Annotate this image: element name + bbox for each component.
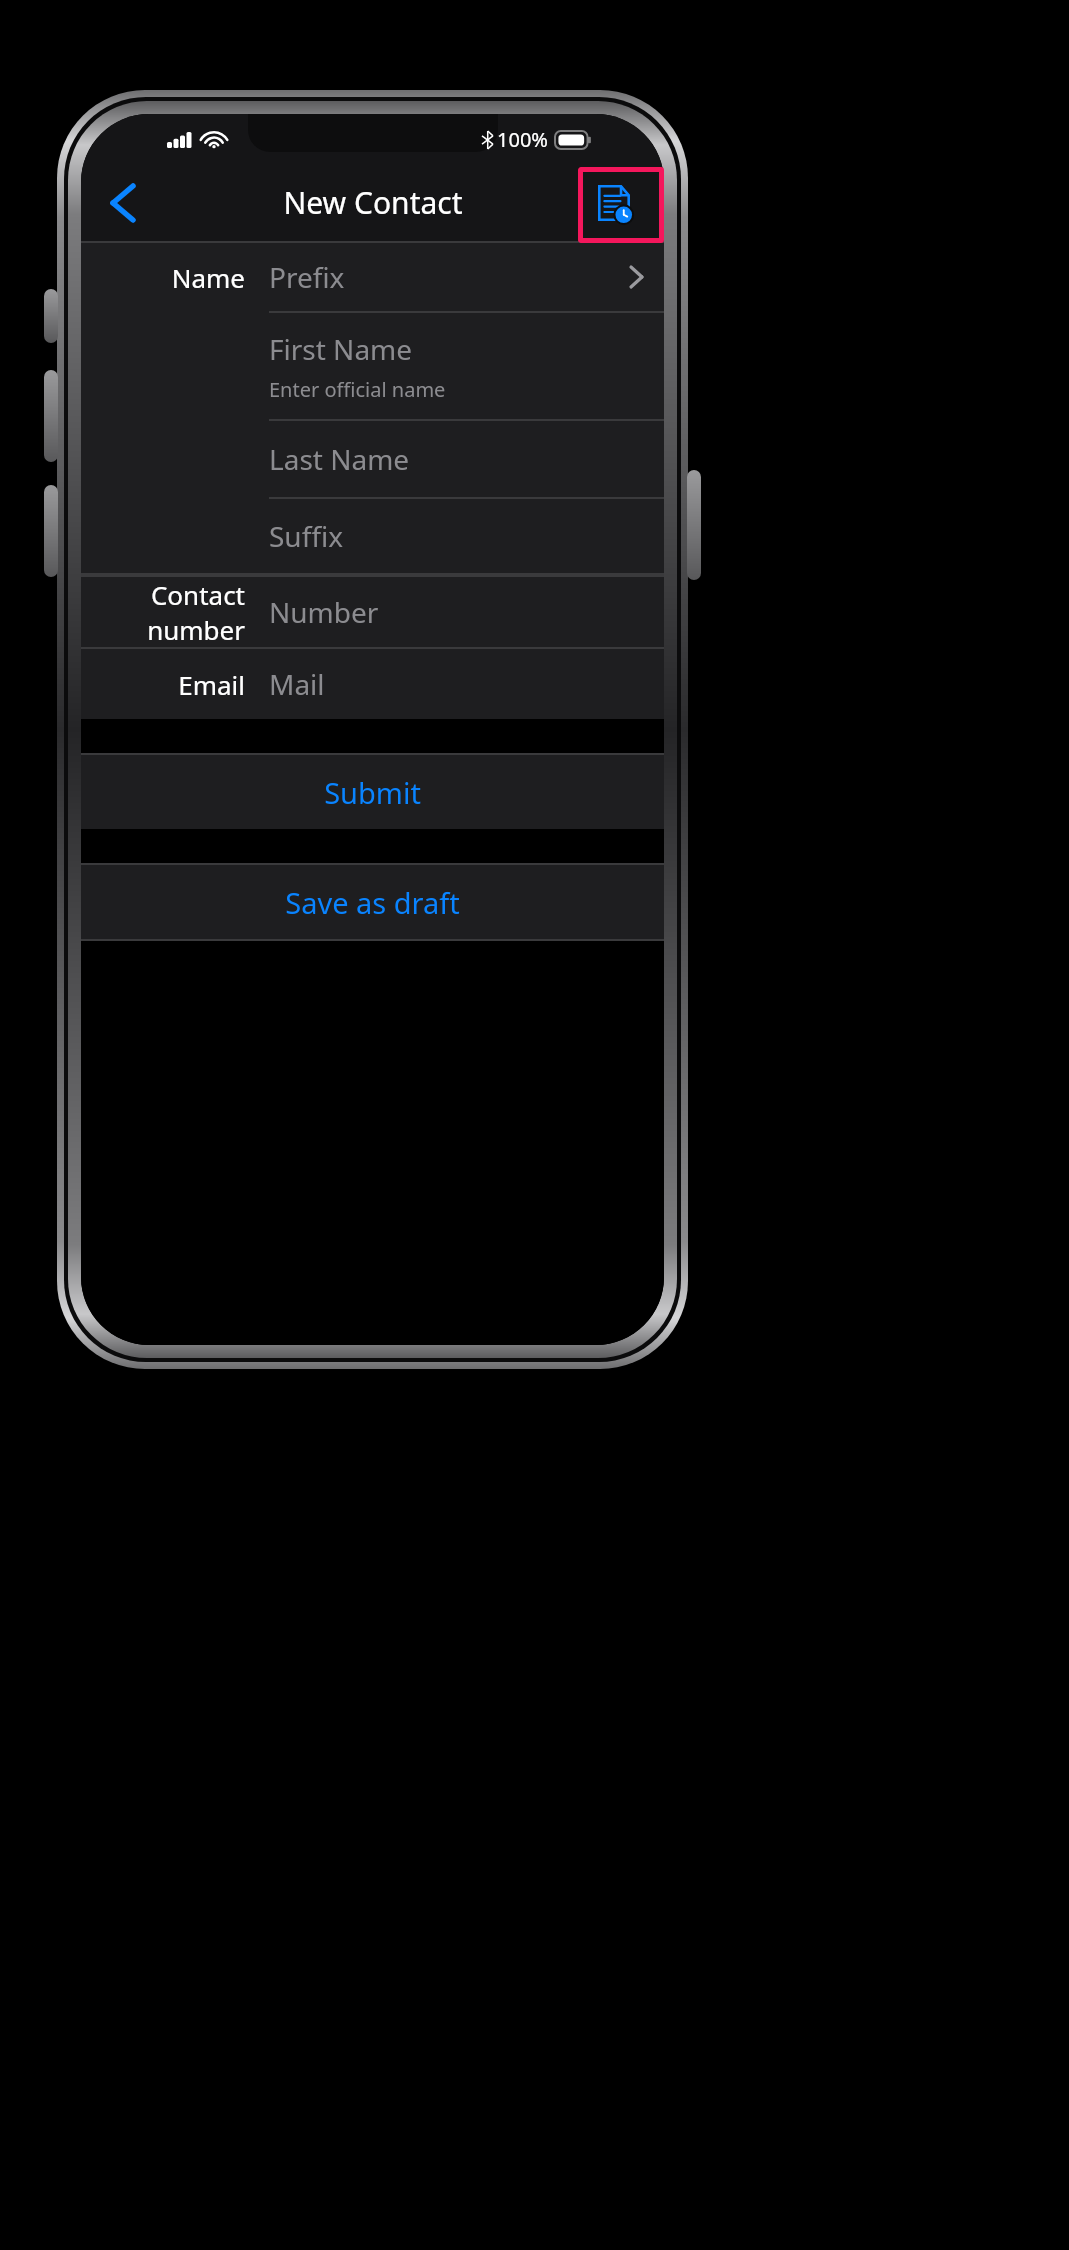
button[interactable]: Save as draft (81, 865, 664, 939)
staticText: Save as draft (285, 883, 460, 922)
staticText: Number (269, 593, 379, 631)
button[interactable]: Contact number (81, 577, 664, 649)
staticText: Prefix (269, 258, 345, 296)
staticText: Name (171, 260, 245, 295)
staticText: New Contact (283, 182, 463, 223)
staticText: Mail (269, 665, 325, 703)
button[interactable]: Name (81, 243, 664, 313)
button[interactable]: Email (81, 649, 664, 719)
button[interactable]: Suffix (81, 499, 664, 575)
staticText: Contact number (81, 577, 245, 647)
staticText: Email (178, 667, 245, 702)
staticText: 100% (497, 126, 548, 153)
button[interactable]: Submit (81, 755, 664, 829)
staticText: Enter official name (269, 376, 446, 403)
button[interactable]: Last Name (81, 421, 664, 499)
staticText: First Name (269, 330, 413, 368)
button[interactable]: First Name (81, 313, 664, 421)
button[interactable]: Back (95, 175, 151, 231)
staticText: Submit (324, 773, 421, 812)
staticText: Last Name (269, 440, 410, 478)
button[interactable]: Save draft (586, 175, 642, 231)
staticText: Suffix (269, 517, 343, 555)
